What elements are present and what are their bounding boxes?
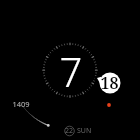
button[interactable]: Watch face xyxy=(0,0,140,140)
